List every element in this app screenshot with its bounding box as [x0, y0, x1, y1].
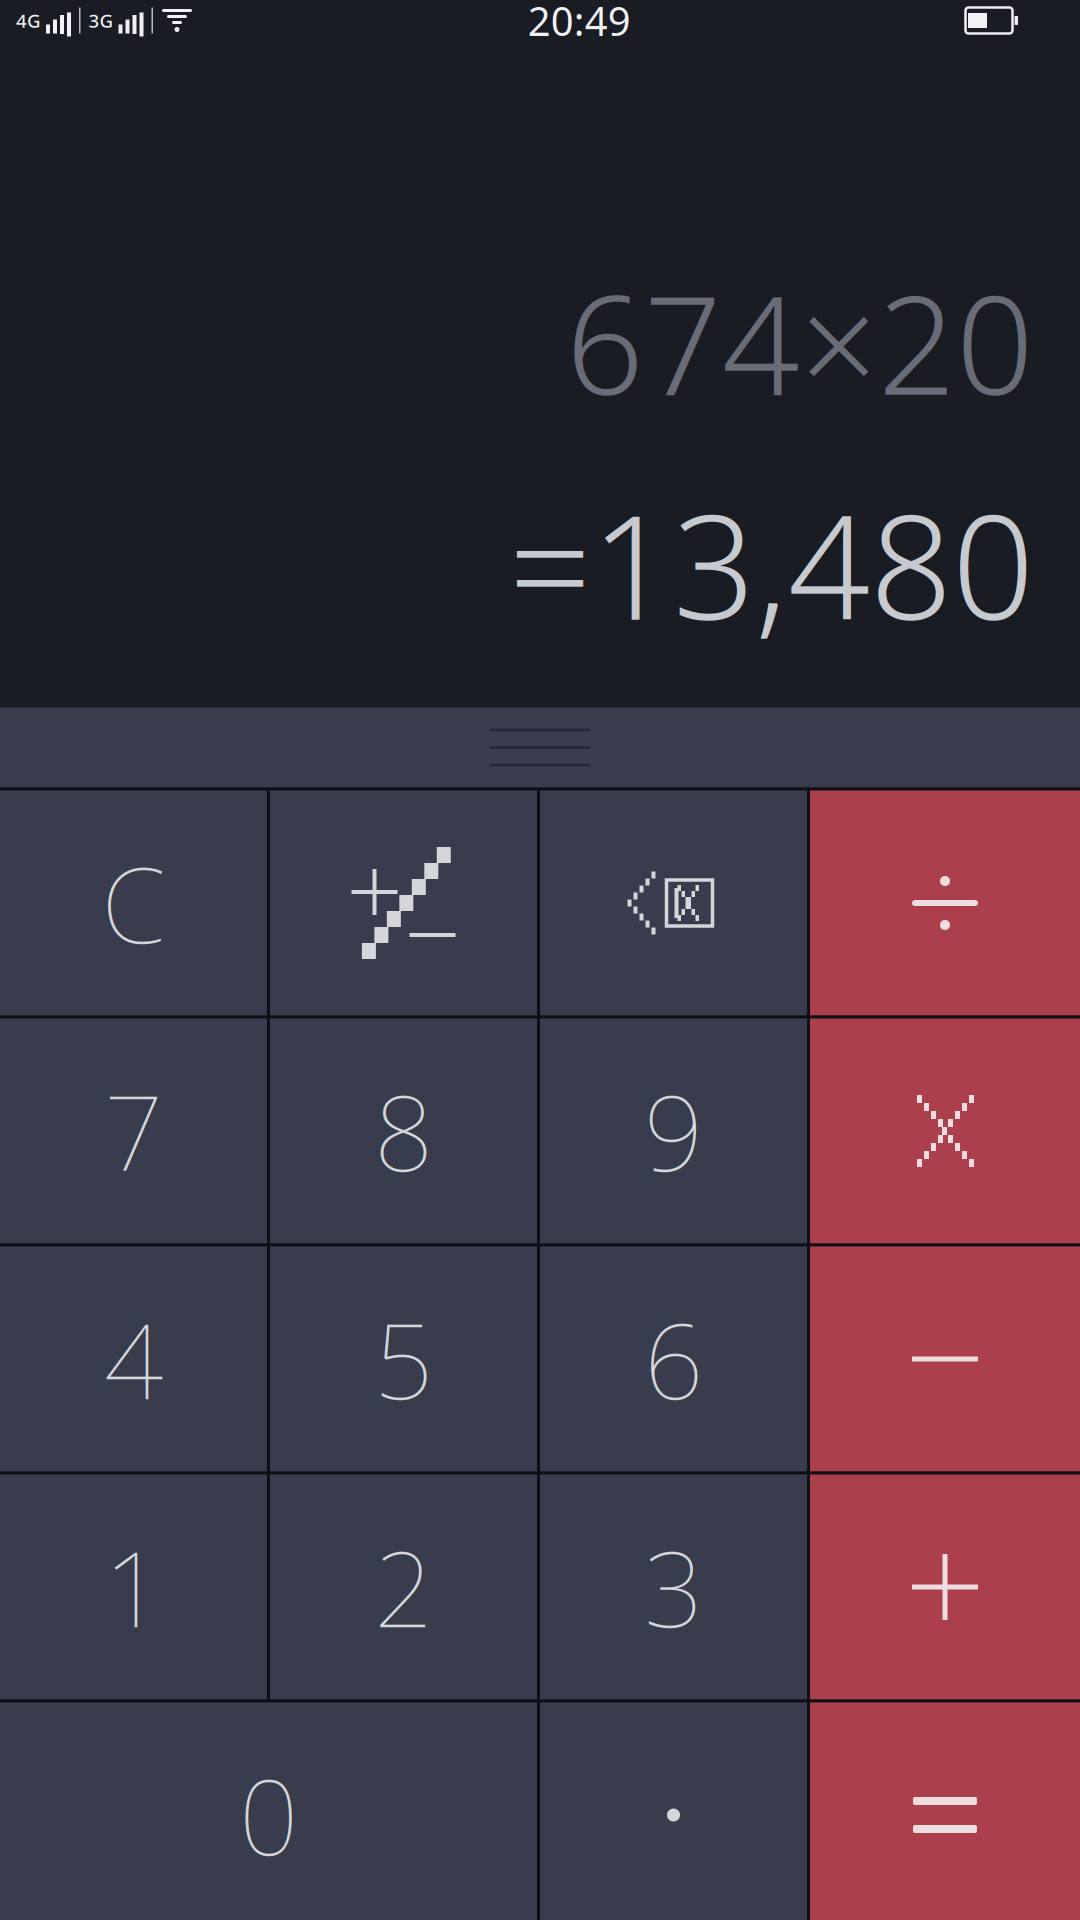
button[interactable]: 9	[540, 1018, 807, 1243]
staticText: 9	[644, 1062, 703, 1200]
button[interactable]: 1	[0, 1474, 267, 1699]
button[interactable]: 8	[270, 1018, 537, 1243]
staticText: 6	[644, 1290, 703, 1428]
staticText: 7	[104, 1062, 163, 1200]
button[interactable]: 6	[540, 1246, 807, 1471]
staticText: 2	[374, 1518, 433, 1656]
staticText: 5	[374, 1290, 433, 1428]
button[interactable]: Plus	[810, 1474, 1080, 1699]
button[interactable]: Minus	[810, 1246, 1080, 1471]
staticText: 8	[374, 1062, 433, 1200]
button[interactable]: Decimal point	[540, 1702, 807, 1920]
staticText: 3	[644, 1518, 703, 1656]
button[interactable]: 4	[0, 1246, 267, 1471]
button[interactable]: 5	[270, 1246, 537, 1471]
staticText: 4G	[16, 8, 41, 33]
button[interactable]: Multiply	[810, 1018, 1080, 1243]
button[interactable]: Backspace	[540, 790, 807, 1015]
staticText: C	[101, 834, 165, 972]
button[interactable]: 0	[0, 1702, 537, 1920]
button[interactable]: 2	[270, 1474, 537, 1699]
button[interactable]: 7	[0, 1018, 267, 1243]
staticText: 4	[104, 1290, 163, 1428]
staticText: 20:49	[528, 0, 631, 47]
staticText: 1	[104, 1518, 163, 1656]
staticText: =13,480	[509, 468, 1034, 659]
staticText: 0	[239, 1746, 298, 1884]
staticText: 3G	[88, 8, 113, 33]
button[interactable]: Divide	[810, 790, 1080, 1015]
staticText: 674×20	[566, 252, 1034, 432]
button[interactable]: C	[0, 790, 267, 1015]
button[interactable]: Equals	[810, 1702, 1080, 1920]
button[interactable]: Plus minus	[270, 790, 537, 1015]
button[interactable]: 3	[540, 1474, 807, 1699]
